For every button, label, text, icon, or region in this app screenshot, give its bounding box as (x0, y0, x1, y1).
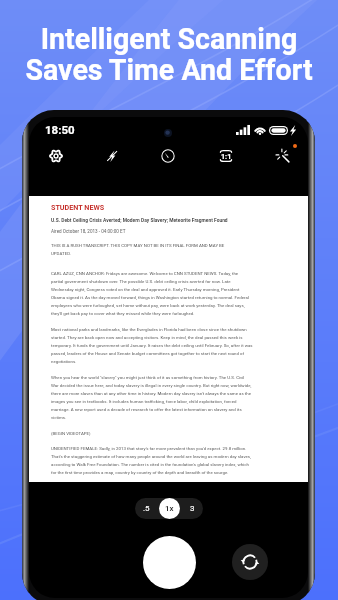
button[interactable]: Aspect ratio (215, 145, 237, 167)
staticText: Most national parks and landmarks, like … (51, 327, 247, 332)
staticText: for the first time provides a map, count… (51, 470, 229, 475)
staticText: started. They are back open now and acce… (51, 335, 243, 340)
button[interactable]: 3 (181, 498, 203, 519)
button[interactable]: Capture photo (143, 536, 196, 589)
button[interactable]: .5 (135, 498, 157, 519)
staticText: When you hear the world "slavery" you mi… (51, 375, 245, 380)
staticText: That's the staggering estimate of how ma… (51, 454, 251, 459)
staticText: STUDENT NEWS (51, 203, 105, 211)
button[interactable]: 1x (159, 498, 180, 519)
staticText: 1:1 (221, 152, 232, 160)
staticText: 1x (165, 504, 174, 513)
staticText: negotiations. (51, 359, 77, 364)
staticText: Saves Time And Effort (0, 53, 338, 87)
staticText: passed, leaders of the House and Senate … (51, 351, 245, 356)
staticText: .5 (143, 504, 150, 513)
button[interactable]: Timer (157, 145, 179, 167)
staticText: victims. (51, 415, 67, 420)
staticText: employees who were furloughed, set home … (51, 303, 245, 308)
staticText: 18:50 (45, 123, 75, 136)
staticText: partial government shutdown over. The po… (51, 279, 231, 284)
staticText: temporary. It funds the government until… (51, 343, 253, 348)
staticText: according to Walk Free Foundation. The n… (51, 462, 249, 467)
button[interactable]: Switch camera (232, 544, 268, 580)
staticText: THIS IS A RUSH TRANSCRIPT. THIS COPY MAY… (51, 243, 225, 248)
staticText: (BEGIN VIDEOTAPE) (51, 431, 91, 436)
staticText: Aired October 18, 2013 - 04:00:00 ET (51, 229, 126, 234)
staticText: Obama signed it. As the day moved forwar… (51, 295, 249, 300)
button[interactable]: Flash off (101, 145, 123, 167)
staticText: U.S. Debt Ceiling Crisis Averted; Modern… (51, 217, 228, 223)
staticText: there are more slaves than at any other … (51, 391, 251, 396)
staticText: UPDATED. (51, 251, 71, 256)
staticText: 3 (190, 504, 195, 513)
button[interactable]: Enhance (272, 145, 294, 167)
staticText: they'll get back pay to cover what they … (51, 311, 195, 316)
button[interactable]: Settings (45, 145, 67, 167)
staticText: War decided the issue here, and today sl… (51, 383, 252, 388)
staticText: Intelligent Scanning (0, 22, 338, 56)
staticText: UNIDENTIFIED FEMALE: Sadly, in 2013 that… (51, 446, 247, 451)
staticText: marriage. A new report used a decade of … (51, 407, 242, 412)
staticText: CARL AZUZ, CNN ANCHOR: Fridays are aweso… (51, 271, 239, 276)
staticText: images you see in textbooks. It includes… (51, 399, 237, 404)
staticText: Wednesday night, Congress voted on the d… (51, 287, 240, 292)
